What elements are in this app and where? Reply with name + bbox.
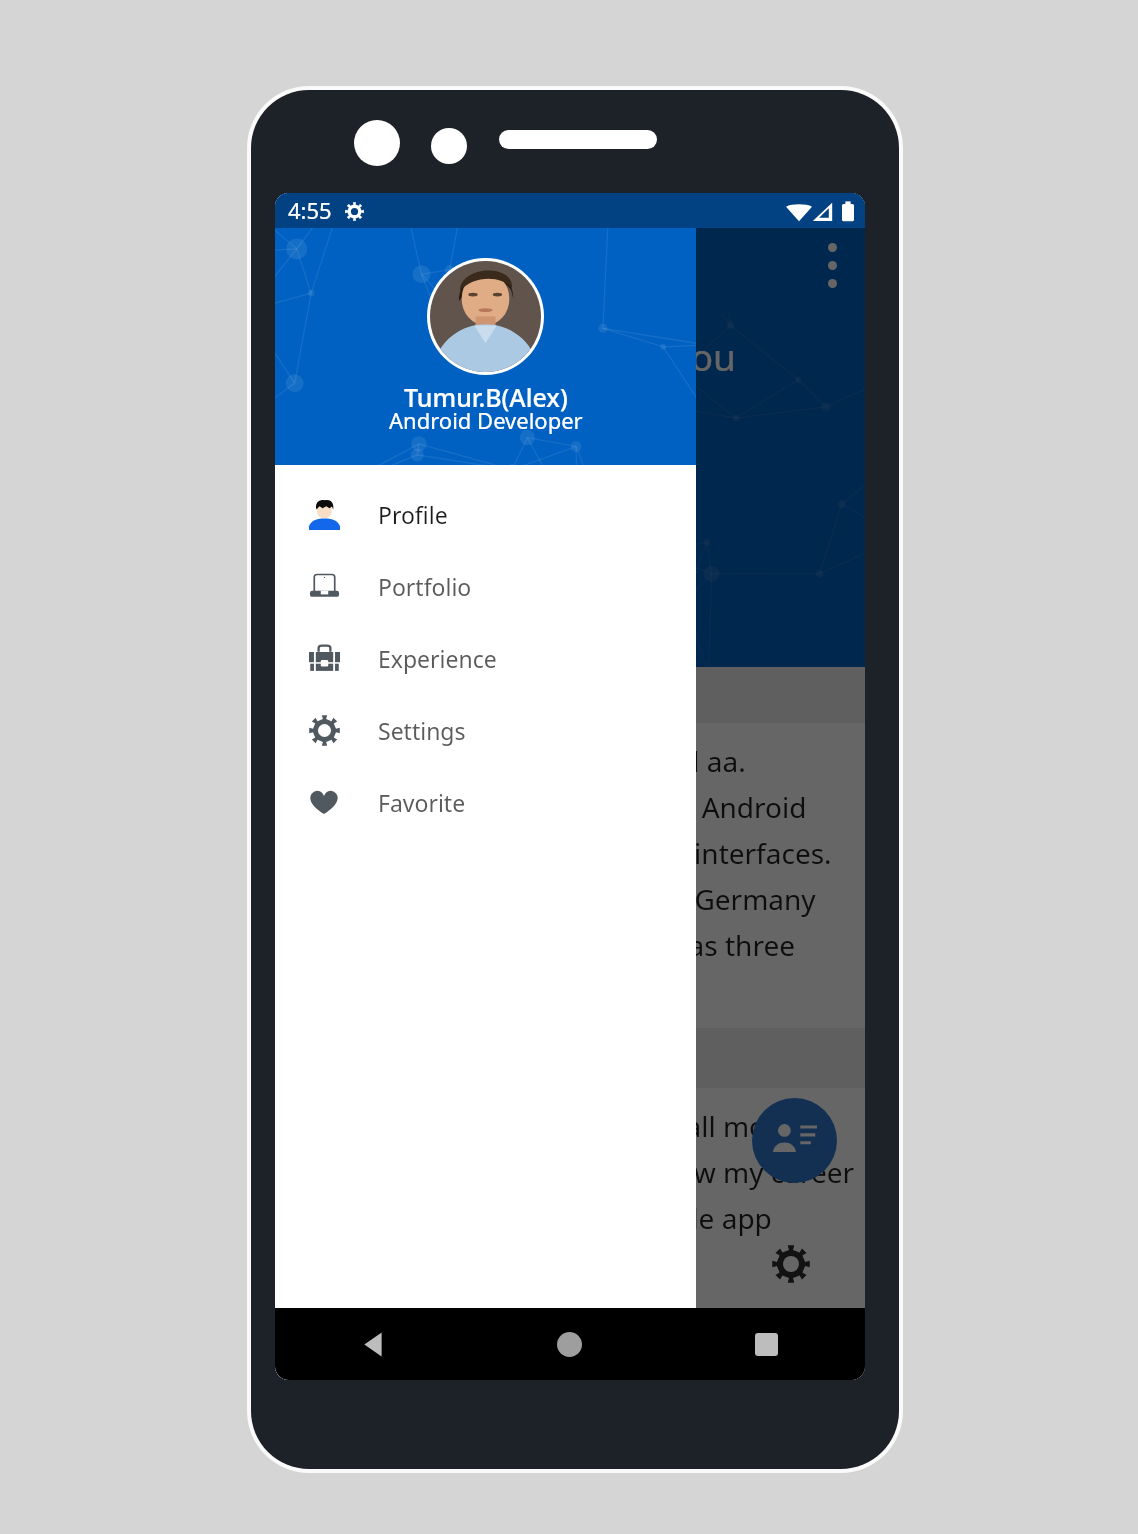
staticText: Settings [378,715,466,746]
staticText: Experience [378,643,497,674]
button[interactable]: Back [275,1308,471,1380]
button[interactable]: More options [818,233,847,298]
button[interactable]: Profile [275,478,696,550]
button[interactable]: Experience [275,622,696,694]
button[interactable]: Contact details [752,1098,837,1183]
staticText: About You [557,331,736,381]
button[interactable]: Portfolio [275,550,696,622]
button[interactable]: Settings [275,694,696,766]
staticText: When I was young my family all moved to … [301,1107,855,1238]
button[interactable]: Settings [762,1235,820,1293]
button[interactable]: Recents [668,1308,865,1380]
staticText: 4:55 [288,195,332,225]
staticText: Portfolio [378,571,472,602]
staticText: Profile [378,499,448,530]
button[interactable]: Favorite [275,766,696,838]
staticText: Favorite [378,787,466,818]
staticText: My name is Tumur Baatar, and aa. I am no… [301,742,832,965]
button[interactable]: Home [471,1308,668,1380]
staticText: Tumur.B(Alex) [404,380,568,414]
staticText: Android Developer [389,405,583,435]
